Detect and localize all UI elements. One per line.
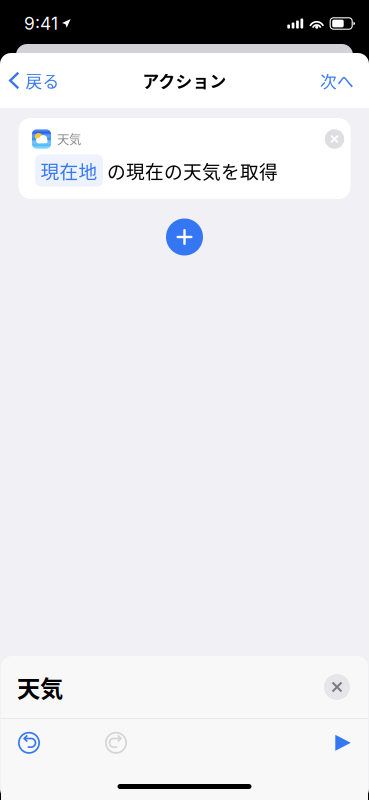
- staticText: 戻る: [25, 68, 59, 92]
- staticText: の現在の天気を取得: [107, 157, 278, 184]
- button[interactable]: 次へ: [305, 58, 369, 102]
- staticText: 天気: [57, 130, 81, 148]
- staticText: アクション: [142, 68, 226, 92]
- button[interactable]: クリア: [315, 665, 359, 709]
- staticText: 9:41: [24, 13, 58, 34]
- button[interactable]: アクションを追加: [158, 209, 210, 265]
- button[interactable]: やり直す: [88, 719, 144, 767]
- button[interactable]: 取り消す: [1, 719, 57, 767]
- staticText: 天気: [17, 670, 63, 704]
- staticText: 現在地: [40, 157, 97, 184]
- button[interactable]: 実行: [319, 719, 367, 767]
- staticText: 次へ: [320, 68, 354, 92]
- button[interactable]: 戻る: [0, 58, 71, 102]
- button[interactable]: 削除: [318, 126, 350, 152]
